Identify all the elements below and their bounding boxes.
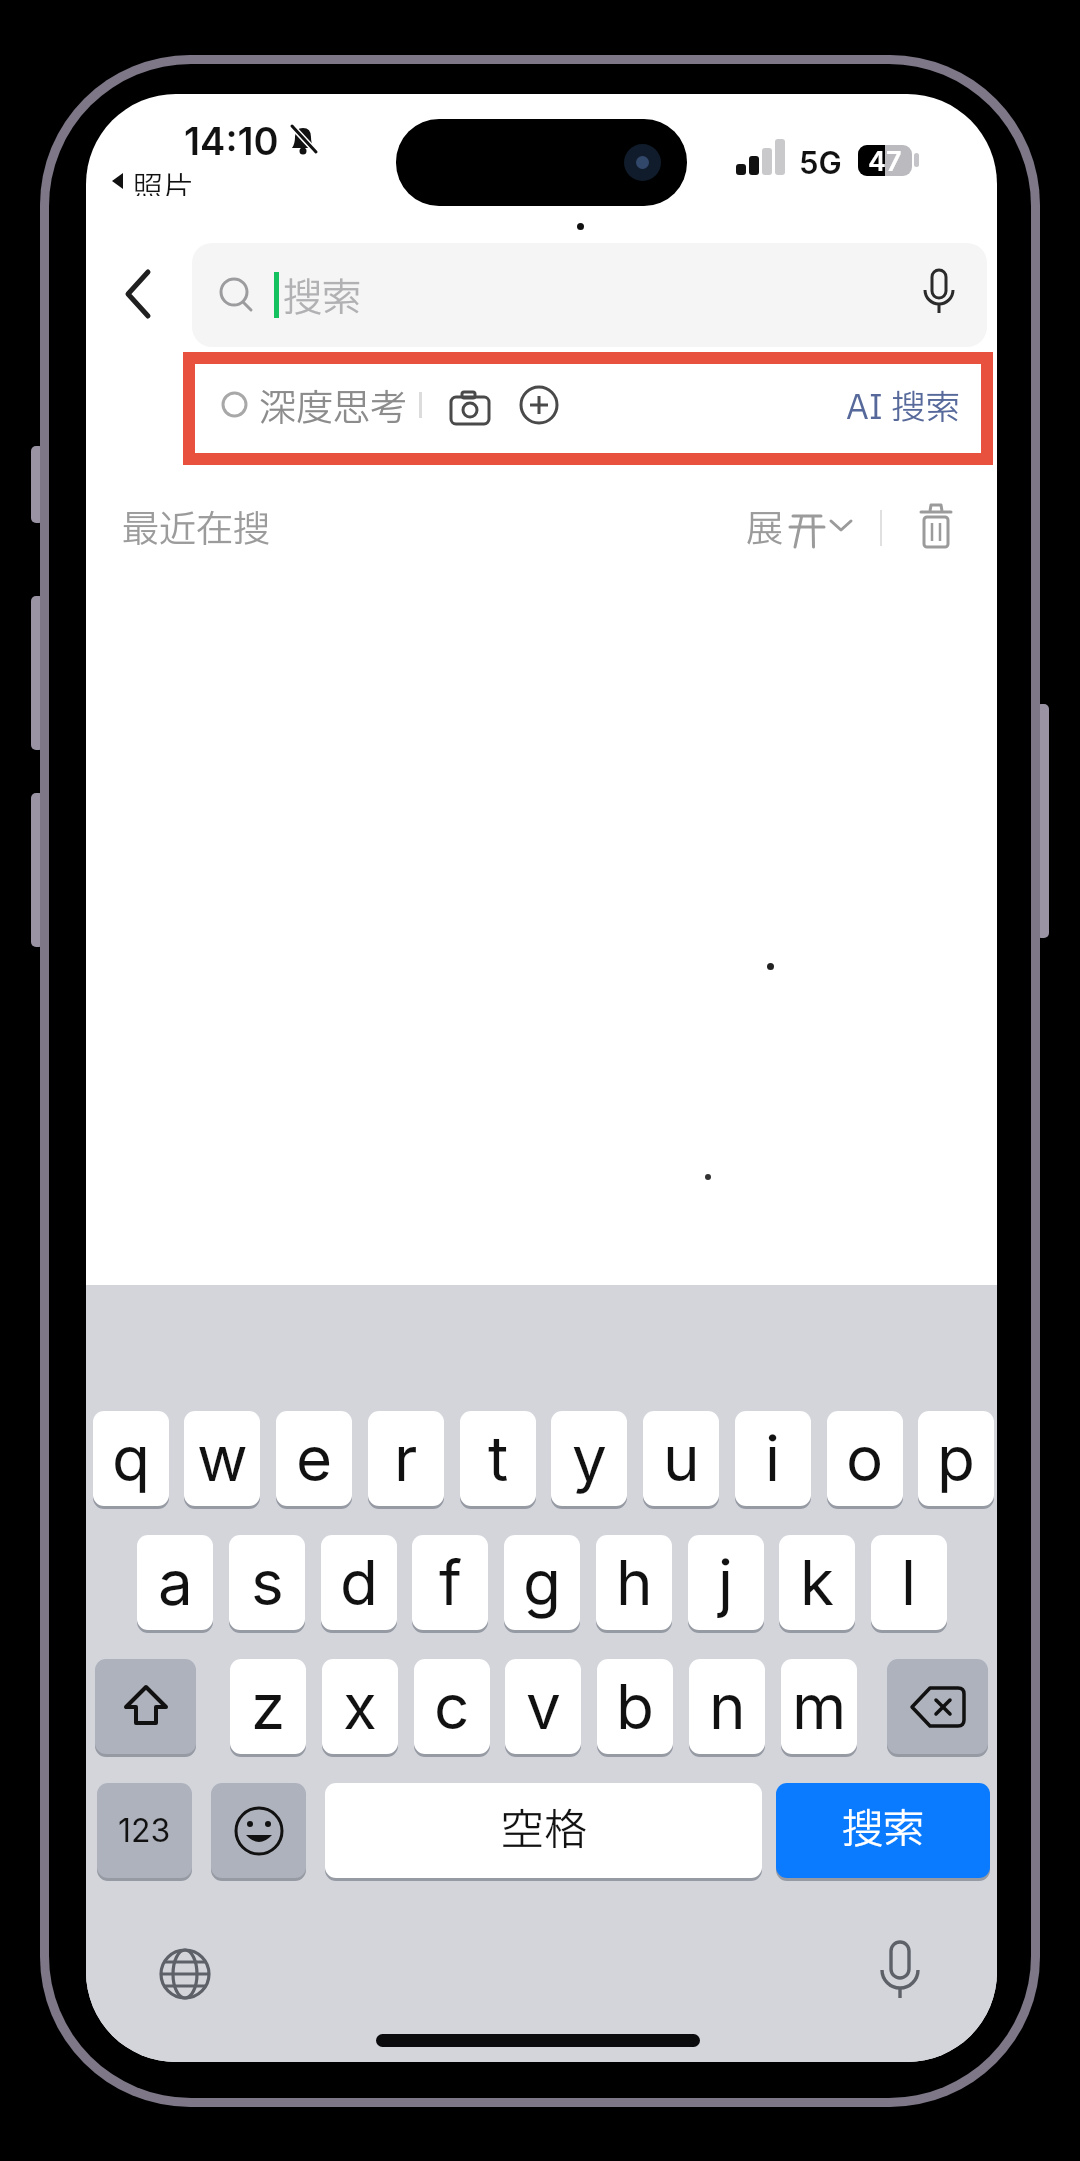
button[interactable]: b [597,1659,673,1754]
button[interactable]: a [137,1535,213,1630]
button[interactable]: d [321,1535,397,1630]
button[interactable] [211,1783,306,1878]
staticText: n [709,1669,746,1744]
button[interactable] [912,499,960,553]
button[interactable]: r [368,1411,444,1506]
staticText: 空格 [501,1799,587,1863]
button[interactable]: v [505,1659,581,1754]
button[interactable]: u [643,1411,719,1506]
staticText: 展 [746,503,783,549]
button[interactable]: y [551,1411,627,1506]
staticText: c [434,1669,470,1744]
staticText: w [197,1421,248,1496]
staticText: 47 [868,145,902,176]
button[interactable]: j [688,1535,764,1630]
button[interactable]: x [322,1659,398,1754]
staticText: 123 [118,1811,171,1850]
staticText: b [616,1669,654,1744]
staticText: z [251,1669,286,1744]
button[interactable]: k [779,1535,855,1630]
staticText: y [572,1421,607,1496]
staticText: r [394,1421,418,1496]
staticText: i [765,1421,781,1496]
button[interactable]: i [735,1411,811,1506]
button[interactable] [887,1659,988,1754]
staticText: a [158,1545,193,1620]
staticText: 14:10 [184,118,279,162]
staticText: p [937,1421,975,1496]
staticText: 搜索 [283,270,362,320]
button[interactable]: AI 搜索 [843,382,963,434]
button[interactable]: s [229,1535,305,1630]
button[interactable]: l [871,1535,947,1630]
staticText: l [901,1545,917,1620]
staticText: f [439,1545,462,1620]
button[interactable]: 123 [97,1783,192,1878]
staticText: h [616,1545,653,1620]
staticText: 5G [799,144,842,182]
staticText: q [112,1421,150,1496]
staticText: 最近在搜 [122,503,270,549]
button[interactable]: e [276,1411,352,1506]
button[interactable]: t [460,1411,536,1506]
staticText: d [340,1545,378,1620]
staticText: s [251,1545,284,1620]
button[interactable]: o [827,1411,903,1506]
button[interactable] [95,1659,196,1754]
button[interactable]: q [93,1411,169,1506]
button[interactable]: 展 [746,503,856,549]
staticText: u [663,1421,700,1496]
button[interactable]: g [504,1535,580,1630]
button[interactable]: p [918,1411,994,1506]
button[interactable]: 搜索 [776,1783,990,1878]
staticText: j [718,1545,734,1620]
button[interactable]: n [689,1659,765,1754]
staticText: 照片 [133,166,193,196]
staticText: 搜索 [842,1800,924,1861]
staticText: m [792,1669,847,1744]
button[interactable] [874,1940,926,2006]
staticText: k [800,1545,835,1620]
staticText: g [523,1545,562,1620]
button[interactable] [116,264,160,324]
button[interactable]: f [412,1535,488,1630]
staticText: 深度思考 [259,382,407,434]
button[interactable]: 深度思考 [183,352,993,465]
button[interactable]: 空格 [325,1783,762,1878]
staticText: t [488,1421,509,1496]
button[interactable]: h [596,1535,672,1630]
staticText: x [343,1669,377,1744]
staticText: v [526,1669,561,1744]
button[interactable]: c [414,1659,490,1754]
button[interactable]: w [184,1411,260,1506]
button[interactable] [157,1946,213,2002]
staticText: e [296,1421,333,1496]
button[interactable]: z [230,1659,306,1754]
staticText: AI 搜索 [846,383,960,434]
button[interactable]: m [781,1659,857,1754]
staticText: o [846,1421,884,1496]
button[interactable]: 搜索 [192,243,987,347]
